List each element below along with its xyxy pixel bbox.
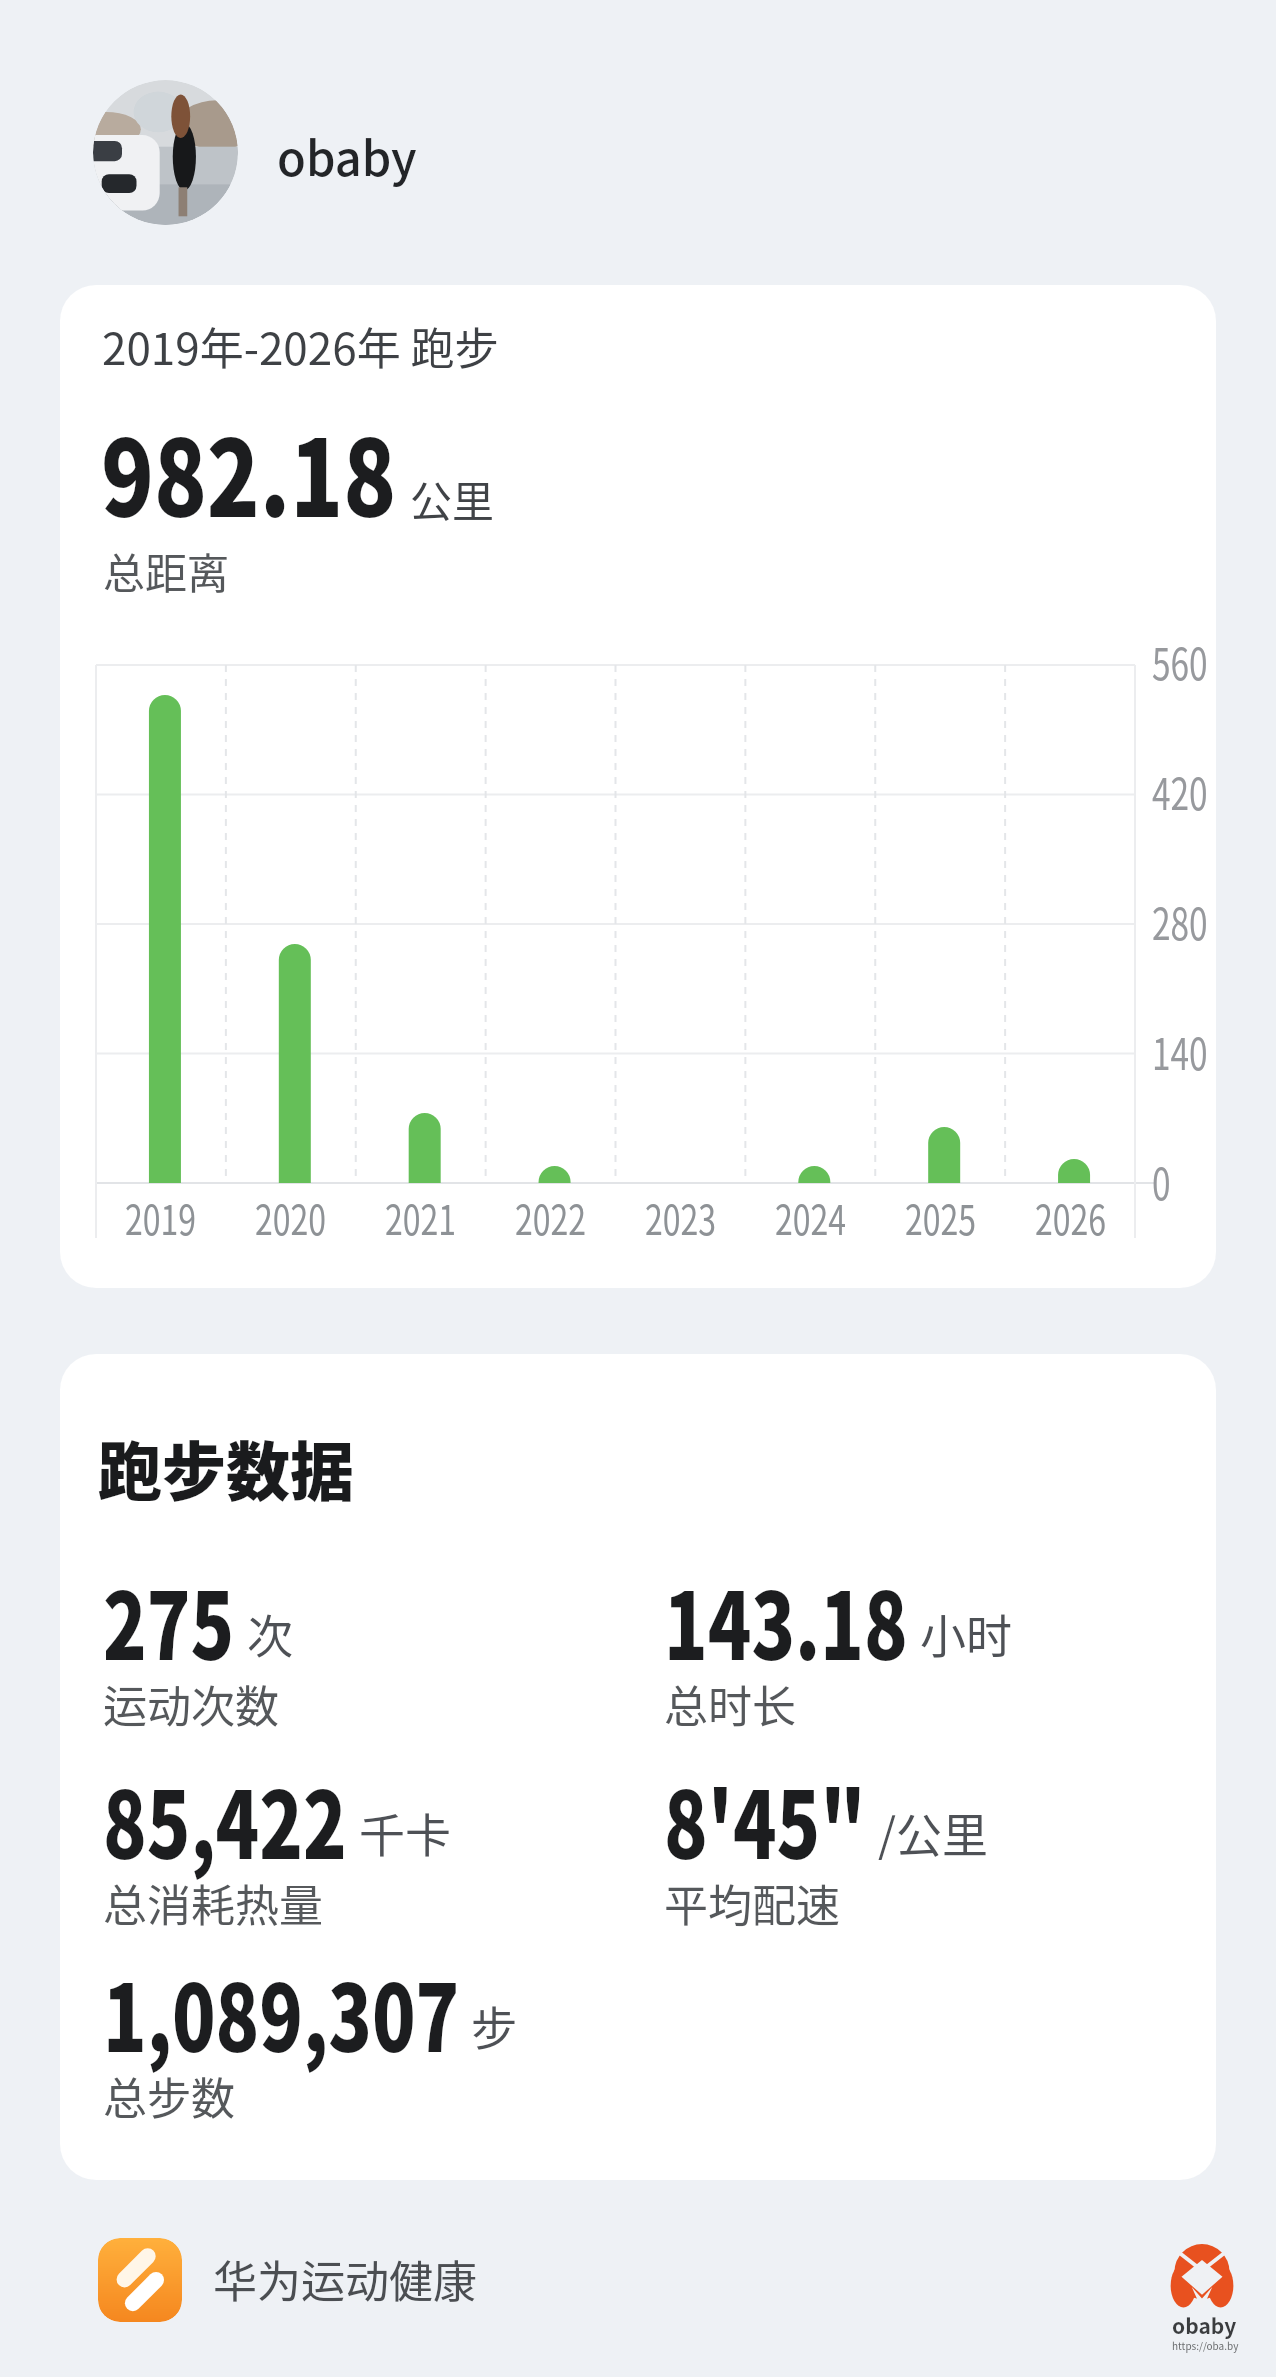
staticText: 560 bbox=[1152, 629, 1208, 693]
staticText: 140 bbox=[1152, 1019, 1208, 1083]
button[interactable]: 跑步数据 bbox=[60, 1354, 1216, 2180]
staticText: 2023 bbox=[645, 1187, 717, 1246]
button[interactable] bbox=[93, 80, 238, 225]
button[interactable]: 2019年-2026年 跑步 bbox=[60, 285, 1216, 1288]
staticText: 2022 bbox=[515, 1187, 587, 1246]
staticText: obaby bbox=[277, 121, 417, 189]
staticText: 143.18 bbox=[664, 1553, 908, 1686]
staticText: 2024 bbox=[775, 1187, 847, 1246]
staticText: 2020 bbox=[255, 1187, 327, 1246]
staticText: https://oba.by bbox=[1172, 2338, 1239, 2352]
staticText: 总距离 bbox=[103, 540, 230, 601]
staticText: 次 bbox=[247, 1600, 293, 1667]
staticText: 2025 bbox=[905, 1187, 977, 1246]
button[interactable] bbox=[1170, 2246, 1234, 2310]
staticText: 2019年-2026年 跑步 bbox=[102, 314, 499, 378]
staticText: 总消耗热量 bbox=[103, 1871, 323, 1935]
staticText: 420 bbox=[1152, 759, 1208, 823]
staticText: 千卡 bbox=[359, 1799, 451, 1866]
staticText: 1,089,307 bbox=[103, 1945, 459, 2078]
staticText: 跑步数据 bbox=[98, 1421, 354, 1514]
staticText: obaby bbox=[1172, 2310, 1237, 2340]
staticText: 2019 bbox=[125, 1187, 197, 1246]
staticText: 85,422 bbox=[103, 1752, 347, 1885]
staticText: 华为运动健康 bbox=[213, 2247, 477, 2311]
staticText: 2026 bbox=[1035, 1187, 1107, 1246]
staticText: 公里 bbox=[410, 468, 495, 529]
staticText: /公里 bbox=[878, 1799, 989, 1866]
staticText: 8'45" bbox=[664, 1752, 866, 1885]
staticText: 2021 bbox=[385, 1187, 457, 1246]
staticText: 步 bbox=[471, 1992, 517, 2059]
staticText: 总时长 bbox=[664, 1672, 796, 1736]
staticText: 总步数 bbox=[103, 2064, 235, 2128]
staticText: 小时 bbox=[920, 1600, 1012, 1667]
staticText: 982.18 bbox=[101, 394, 396, 547]
button[interactable] bbox=[98, 2238, 182, 2322]
staticText: 运动次数 bbox=[103, 1672, 279, 1736]
staticText: 280 bbox=[1152, 889, 1208, 953]
staticText: 275 bbox=[103, 1553, 235, 1686]
staticText: 平均配速 bbox=[664, 1871, 840, 1935]
staticText: 0 bbox=[1152, 1149, 1171, 1213]
